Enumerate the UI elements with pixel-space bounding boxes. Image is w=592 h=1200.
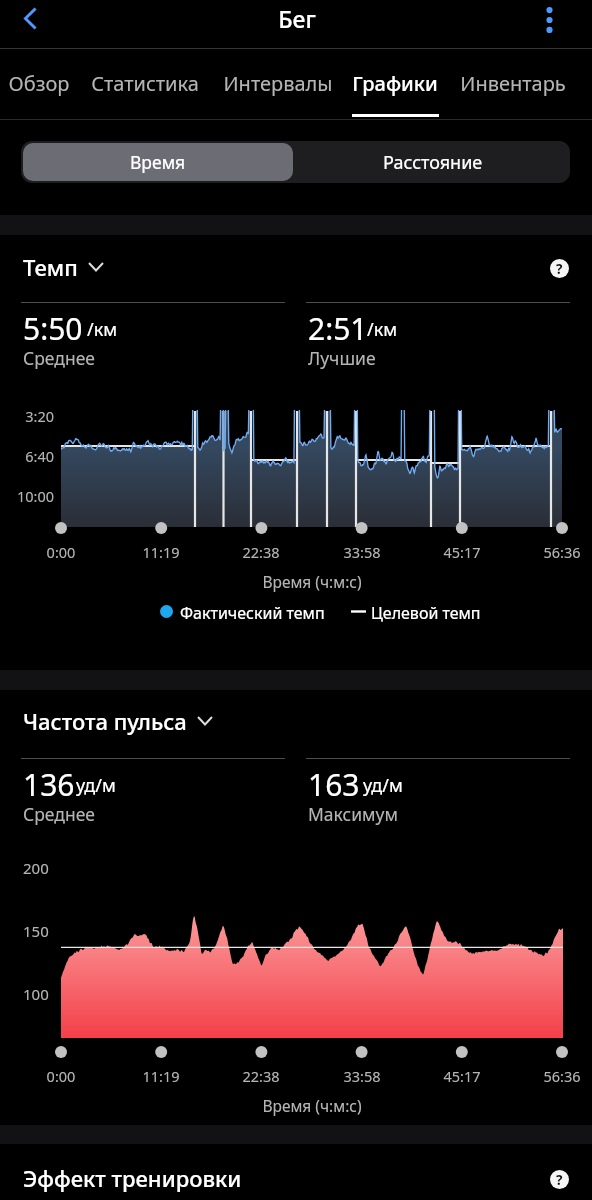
staticText: 22:38 xyxy=(216,542,306,562)
button[interactable]: Help xyxy=(544,253,574,283)
staticText: 2:51 xyxy=(308,308,368,349)
staticText: ? xyxy=(556,1171,563,1189)
staticText: Максимум xyxy=(308,802,398,826)
staticText: 11:19 xyxy=(116,542,206,562)
button[interactable]: Время xyxy=(23,143,293,181)
button[interactable]: Темп xyxy=(23,245,592,289)
button[interactable]: More options xyxy=(525,2,573,38)
button[interactable]: Обзор xyxy=(0,49,79,120)
staticText: Обзор xyxy=(0,70,79,97)
staticText: 33:58 xyxy=(317,542,407,562)
staticText: уд/м xyxy=(363,773,403,798)
staticText: Лучшие xyxy=(308,346,376,370)
staticText: /км xyxy=(87,317,118,342)
staticText: Эффект тренировки xyxy=(23,1163,242,1193)
staticText: 33:58 xyxy=(317,1066,407,1086)
button[interactable]: Инвентарь xyxy=(454,49,572,120)
staticText: Бег xyxy=(197,3,397,34)
button[interactable]: Графики xyxy=(346,49,444,120)
button[interactable]: Частота пульса xyxy=(23,699,592,743)
staticText: 163 xyxy=(308,764,360,805)
staticText: Время (ч:м:с) xyxy=(212,1095,412,1116)
staticText: 56:36 xyxy=(517,1066,592,1086)
staticText: 45:17 xyxy=(417,542,507,562)
staticText: Время xyxy=(130,150,186,174)
button[interactable]: Эффект тренировки xyxy=(23,1156,592,1200)
staticText: Целевой темп xyxy=(371,602,481,624)
staticText: 3:20 xyxy=(0,406,54,426)
staticText: 136 xyxy=(23,764,75,805)
button[interactable]: Back xyxy=(6,0,55,36)
staticText: 100 xyxy=(23,984,49,1004)
staticText: Расстояние xyxy=(383,150,483,175)
button[interactable]: Интервалы xyxy=(219,49,337,120)
button[interactable]: Help xyxy=(544,1164,574,1194)
staticText: 22:38 xyxy=(216,1066,306,1086)
staticText: уд/м xyxy=(76,773,116,798)
staticText: 150 xyxy=(23,921,49,941)
staticText: 6:40 xyxy=(0,446,54,466)
staticText: 5:50 xyxy=(23,308,83,349)
staticText: 0:00 xyxy=(16,542,106,562)
staticText: Среднее xyxy=(23,346,95,370)
staticText: 45:17 xyxy=(417,1066,507,1086)
staticText: Статистика xyxy=(85,70,205,97)
staticText: ? xyxy=(556,260,563,278)
button[interactable]: Статистика xyxy=(85,49,205,120)
staticText: Фактический темп xyxy=(180,602,325,624)
staticText: 200 xyxy=(23,858,49,878)
staticText: 11:19 xyxy=(116,1066,206,1086)
staticText: 10:00 xyxy=(0,486,54,506)
staticText: Время (ч:м:с) xyxy=(212,571,412,592)
staticText: /км xyxy=(367,317,398,342)
staticText: 0:00 xyxy=(16,1066,106,1086)
staticText: Инвентарь xyxy=(454,70,572,97)
staticText: Интервалы xyxy=(219,70,337,97)
staticText: Графики xyxy=(346,70,444,97)
staticText: Частота пульса xyxy=(23,706,187,736)
button[interactable]: Расстояние xyxy=(295,141,570,183)
staticText: 56:36 xyxy=(517,542,592,562)
staticText: Среднее xyxy=(23,802,95,826)
staticText: Темп xyxy=(23,252,78,282)
